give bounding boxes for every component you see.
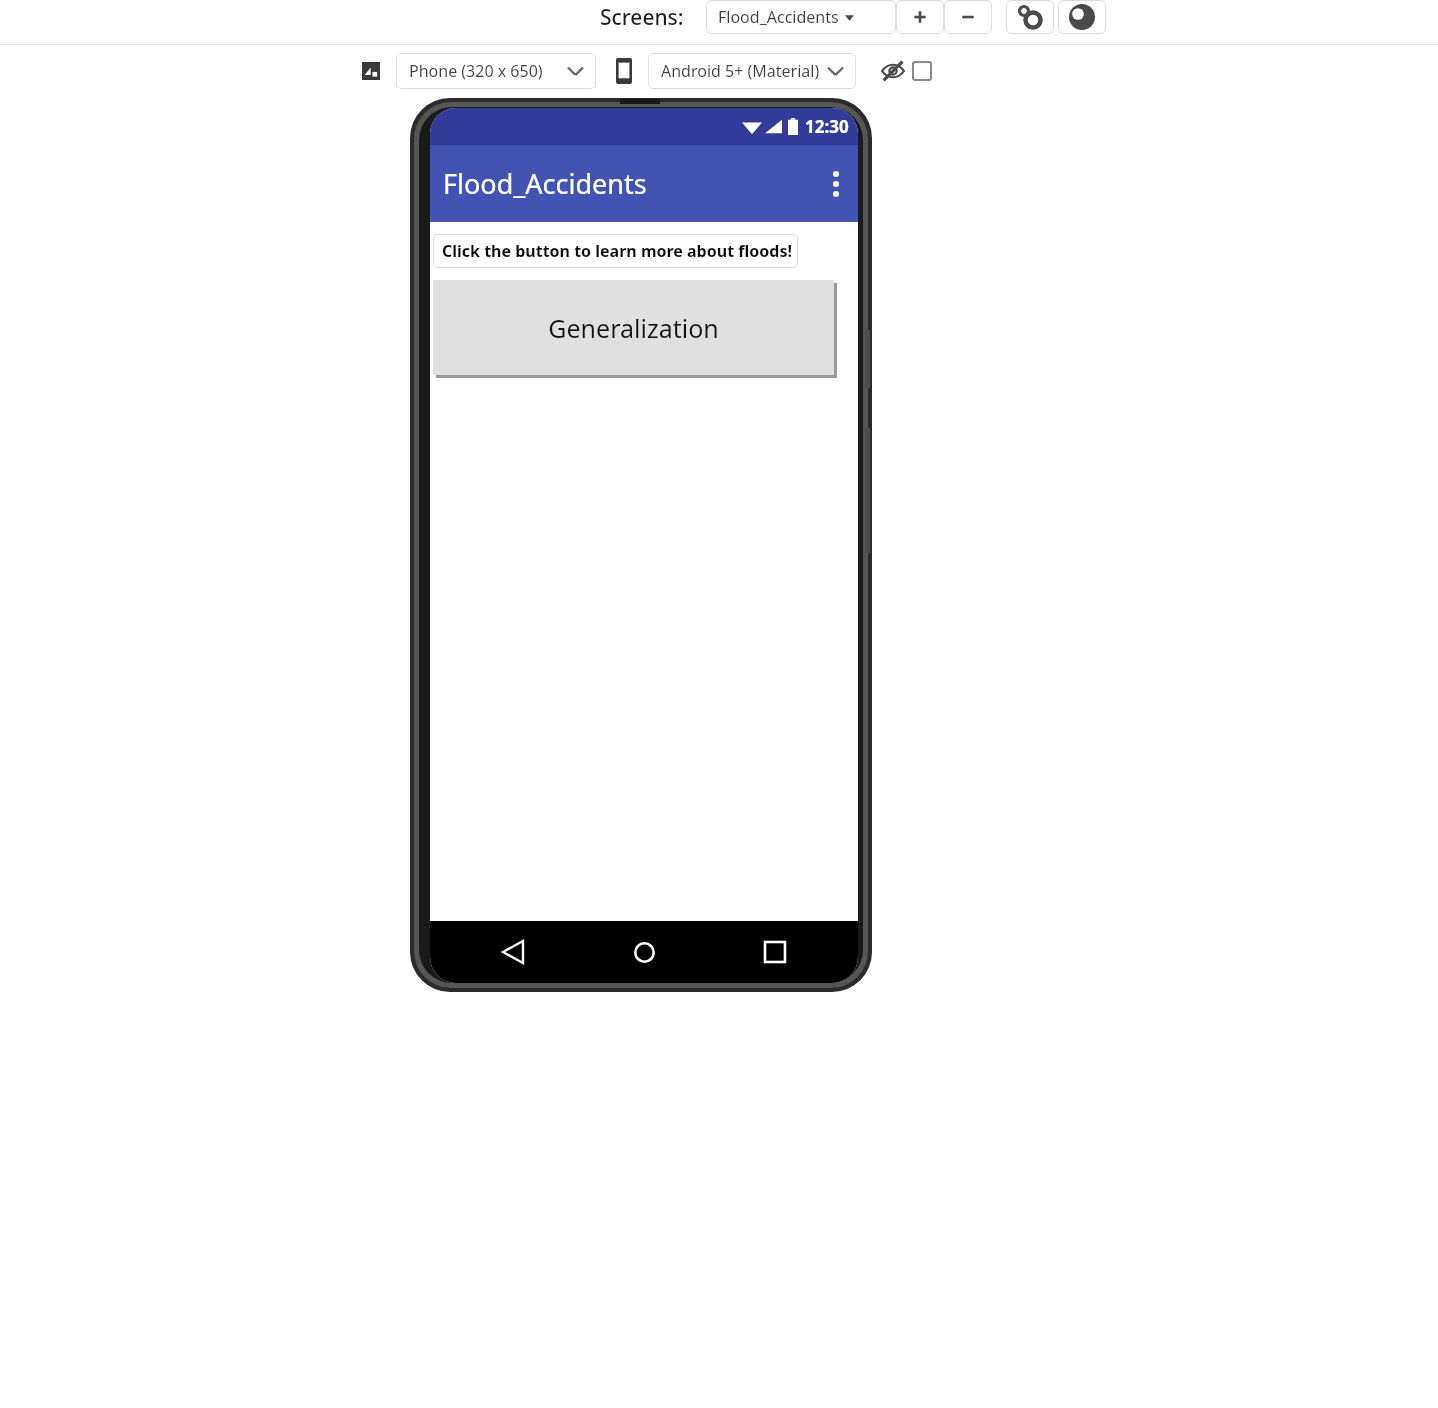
button[interactable]: More options — [814, 156, 858, 212]
button[interactable]: Device preview — [614, 56, 634, 86]
staticText: Android 5+ (Material) — [661, 60, 820, 82]
staticText: Click the button to learn more about flo… — [442, 240, 792, 262]
button[interactable]: Remove screen — [944, 0, 992, 34]
staticText: Generalization — [548, 311, 719, 345]
staticText: Phone (320 x 650) — [409, 60, 543, 82]
button[interactable]: Settings — [1006, 0, 1054, 34]
button[interactable]: Resize — [360, 60, 382, 82]
button[interactable]: Toggle visibility — [878, 56, 908, 86]
button[interactable]: Recent apps — [752, 929, 798, 975]
staticText: 12:30 — [805, 115, 849, 138]
button[interactable]: Add screen — [896, 0, 944, 34]
button[interactable]: Checkbox — [912, 61, 932, 81]
button[interactable]: Back — [490, 929, 536, 975]
staticText: Flood_Accidents — [718, 6, 839, 28]
button[interactable]: Phone (320 x 650) — [396, 53, 596, 89]
button[interactable]: Language — [1058, 0, 1106, 34]
button[interactable]: Generalization — [433, 280, 834, 375]
staticText: Screens: — [600, 3, 684, 32]
button[interactable]: Android 5+ (Material) — [648, 53, 856, 89]
staticText: Flood_Accidents — [443, 165, 647, 202]
button[interactable]: Home — [621, 929, 667, 975]
button[interactable]: Flood_Accidents — [706, 0, 896, 34]
button[interactable]: Click the button to learn more about flo… — [433, 234, 798, 268]
